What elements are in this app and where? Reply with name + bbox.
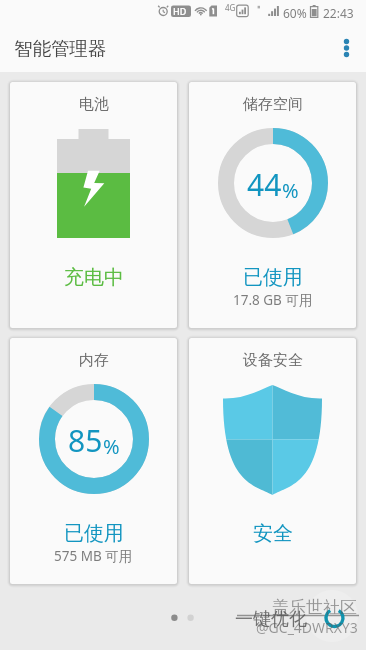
button[interactable]: 设备安全 — [189, 338, 356, 584]
staticText: 智能管理器 — [14, 37, 107, 60]
staticText: 4G — [225, 2, 236, 13]
staticText: % — [103, 433, 120, 460]
button[interactable]: 储存空间 — [189, 82, 356, 328]
staticText: 17.8 GB 可用 — [233, 291, 313, 309]
staticText: 内存 — [79, 351, 109, 370]
staticText: 575 MB 可用 — [54, 547, 133, 565]
staticText: % — [282, 177, 299, 204]
button[interactable]: 内存 — [10, 338, 177, 584]
button[interactable]: 一键优化 — [235, 608, 307, 631]
staticText: @GC_4DWRXY3 — [256, 618, 358, 637]
staticText: 安全 — [253, 521, 293, 546]
staticText: 60% — [283, 5, 307, 21]
staticText: 电池 — [79, 95, 109, 114]
staticText: HD — [173, 5, 187, 17]
staticText: 已使用 — [243, 265, 303, 290]
button[interactable]: More options — [318, 24, 366, 72]
staticText: 已使用 — [64, 521, 124, 546]
staticText: 设备安全 — [243, 351, 303, 370]
button[interactable]: 电池 — [10, 82, 177, 328]
staticText: 储存空间 — [243, 95, 303, 114]
staticText: 22:43 — [323, 5, 354, 21]
staticText: 盖乐世社区 — [272, 597, 357, 618]
staticText: 85 — [68, 420, 103, 461]
staticText: 44 — [247, 164, 282, 205]
staticText: 充电中 — [64, 265, 124, 290]
